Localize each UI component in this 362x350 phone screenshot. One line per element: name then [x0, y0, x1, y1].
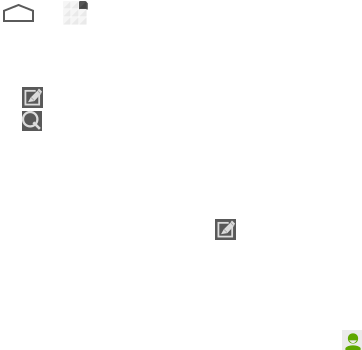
button[interactable]: Account: [342, 330, 362, 350]
button[interactable]: Apps: [63, 1, 87, 25]
button[interactable]: New message: [215, 219, 236, 240]
button[interactable]: Search: [22, 111, 42, 131]
button[interactable]: Home: [4, 5, 33, 21]
button[interactable]: Compose: [22, 87, 43, 108]
